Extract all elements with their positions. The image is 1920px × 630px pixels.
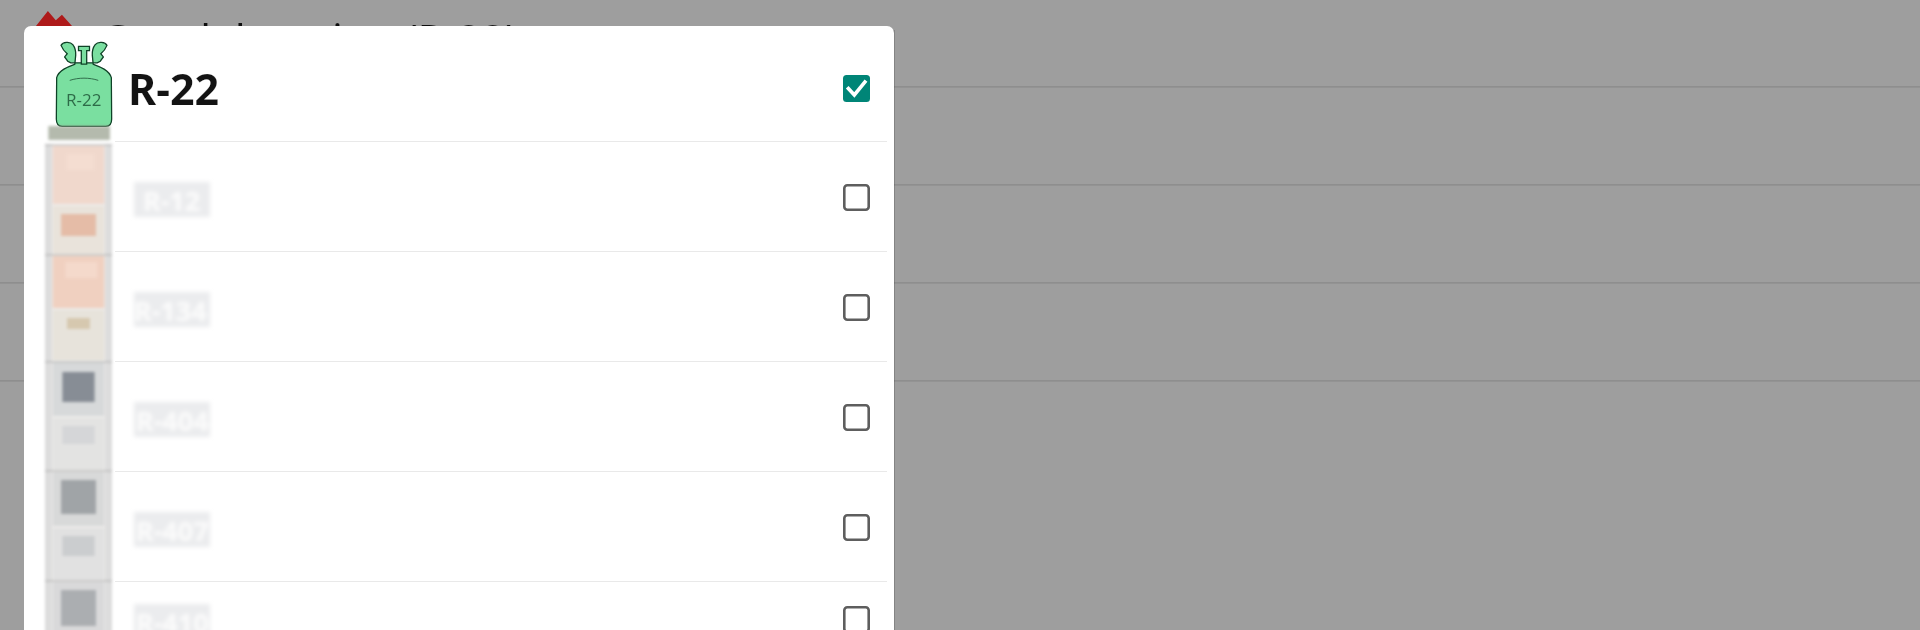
button[interactable]: Select refrigerant: [839, 602, 873, 630]
staticText: R-410: [136, 604, 209, 630]
button[interactable]: Select refrigerant: [839, 290, 873, 324]
button[interactable]: R-407: [24, 472, 894, 582]
staticText: R-134a: [134, 292, 210, 327]
button[interactable]: Select refrigerant: [839, 510, 873, 544]
button[interactable]: R-410: [24, 582, 894, 630]
button[interactable]: Select refrigerant: [839, 180, 873, 214]
button[interactable]: Select refrigerant: [839, 400, 873, 434]
button[interactable]: R-12: [24, 142, 894, 252]
button[interactable]: Selected refrigerant: [839, 71, 873, 105]
staticText: R-22: [128, 59, 220, 118]
button[interactable]: R-404: [24, 362, 894, 472]
button[interactable]: R-134a: [24, 252, 894, 362]
staticText: R-407: [136, 512, 209, 547]
staticText: R-404: [136, 402, 209, 437]
button[interactable]: R-22: [24, 30, 894, 146]
staticText: Gas del equipo (R-22): [100, 10, 518, 67]
staticText: R-12: [143, 182, 201, 217]
staticText: R-22: [66, 88, 102, 111]
